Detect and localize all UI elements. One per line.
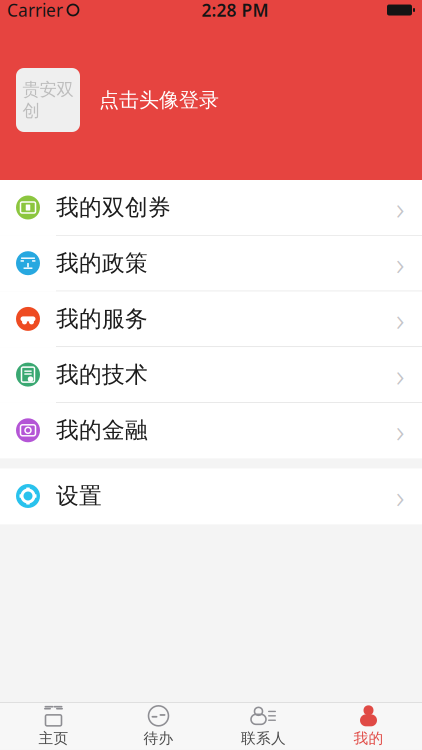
button[interactable]: 我的 (316, 703, 421, 750)
button[interactable]: 待办 (106, 703, 211, 750)
button[interactable]: 设置 (0, 468, 422, 524)
staticText: 2:28 PM (201, 0, 268, 21)
staticText: 我的双创券 (56, 194, 171, 221)
staticText: 贵安双创 (22, 79, 73, 121)
staticText: 我的技术 (56, 361, 148, 388)
staticText: › (396, 242, 404, 284)
staticText: 我的服务 (56, 305, 148, 333)
staticText: 点击头像登录 (99, 88, 219, 112)
button[interactable]: 我的金融 (0, 403, 422, 458)
staticText: 待办 (143, 729, 173, 747)
button[interactable]: 我的政策 (0, 236, 422, 291)
button[interactable]: 主页 (1, 703, 106, 750)
staticText: 联系人 (241, 729, 286, 747)
button[interactable]: 我的双创券 (0, 180, 422, 236)
staticText: 我的 (353, 729, 383, 747)
button[interactable]: 我的服务 (0, 291, 422, 347)
staticText: 我的政策 (56, 249, 148, 277)
button[interactable]: 联系人 (211, 703, 316, 750)
staticText: 设置 (56, 482, 102, 510)
staticText: › (396, 298, 404, 340)
staticText: › (396, 353, 404, 396)
staticText: › (396, 475, 404, 517)
staticText: › (396, 186, 404, 229)
button[interactable]: 贵安双创 (0, 20, 422, 180)
staticText: Carrier (7, 0, 63, 21)
staticText: 主页 (38, 729, 68, 747)
staticText: › (396, 409, 404, 452)
staticText: 我的金融 (56, 416, 148, 444)
button[interactable]: 我的技术 (0, 347, 422, 403)
